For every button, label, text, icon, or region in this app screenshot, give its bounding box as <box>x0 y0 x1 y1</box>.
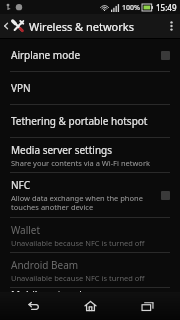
button[interactable]: Android Beam <box>0 253 180 287</box>
staticText: Wireless & networks <box>29 19 134 34</box>
staticText: Android Beam <box>11 258 79 272</box>
staticText: 100% <box>122 3 140 13</box>
button[interactable]: Recent apps <box>123 292 171 320</box>
staticText: Unavailable because NFC is turned off <box>11 273 145 283</box>
staticText: Wallet <box>11 223 41 237</box>
button[interactable]: Wallet <box>0 218 180 252</box>
staticText: Media server settings <box>11 143 113 157</box>
staticText: Unavailable because NFC is turned off <box>11 238 145 248</box>
staticText: VPN <box>11 81 31 95</box>
button[interactable]: VPN <box>0 72 180 104</box>
button[interactable]: Back to Settings <box>0 14 136 38</box>
staticText: 15:49 <box>156 2 177 13</box>
button[interactable]: NFC <box>0 173 180 217</box>
button[interactable]: Airplane mode switch <box>159 50 172 61</box>
button[interactable]: Tethering & portable hotspot <box>0 105 180 137</box>
staticText: Share your contents via a Wi-Fi network <box>11 158 150 168</box>
button[interactable]: Back <box>9 292 57 320</box>
button[interactable]: Airplane mode <box>0 39 180 71</box>
button[interactable]: Media server settings <box>0 138 180 172</box>
staticText: Tethering & portable hotspot <box>11 114 148 128</box>
staticText: Airplane mode <box>11 48 81 62</box>
button[interactable]: Home <box>66 292 114 320</box>
staticText: NFC <box>11 178 31 192</box>
staticText: Mobile networks <box>11 288 90 292</box>
staticText: Allow data exchange when the phone touch… <box>11 193 153 212</box>
button[interactable]: NFC switch <box>159 190 172 201</box>
button[interactable]: More options <box>162 14 180 38</box>
button[interactable]: Mobile networks <box>0 288 180 292</box>
